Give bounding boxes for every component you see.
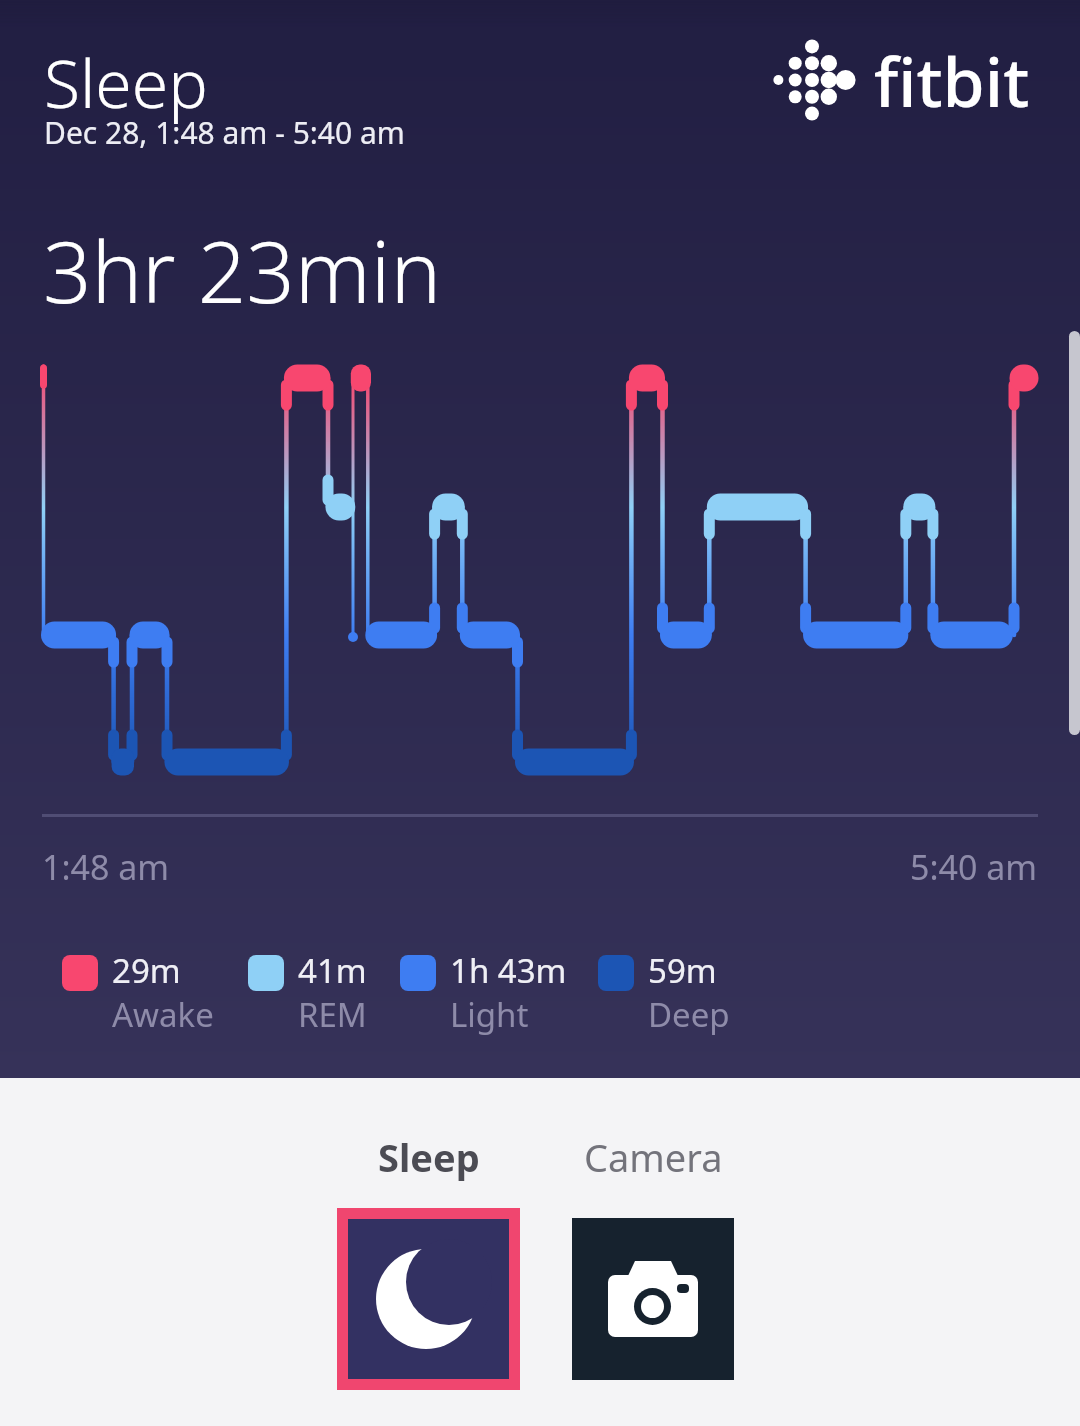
button[interactable] (572, 1218, 734, 1380)
staticText: Sleep (378, 1131, 480, 1183)
staticText: 5:40 am (910, 844, 1038, 890)
staticText: Light (450, 992, 529, 1037)
staticText: fitbit (874, 34, 1030, 127)
staticText: Camera (584, 1131, 723, 1183)
staticText: 1h 43m (450, 948, 567, 993)
staticText: Awake (112, 992, 214, 1037)
staticText: REM (298, 992, 367, 1037)
staticText: 41m (298, 948, 367, 993)
staticText: 3hr 23min (43, 212, 441, 328)
button[interactable] (337, 1208, 520, 1390)
staticText: 1:48 am (42, 844, 170, 890)
staticText: 59m (648, 948, 717, 993)
staticText: 29m (112, 948, 181, 993)
staticText: Deep (648, 992, 730, 1037)
staticText: Sleep (44, 37, 208, 127)
staticText: Dec 28, 1:48 am - 5:40 am (44, 112, 405, 153)
